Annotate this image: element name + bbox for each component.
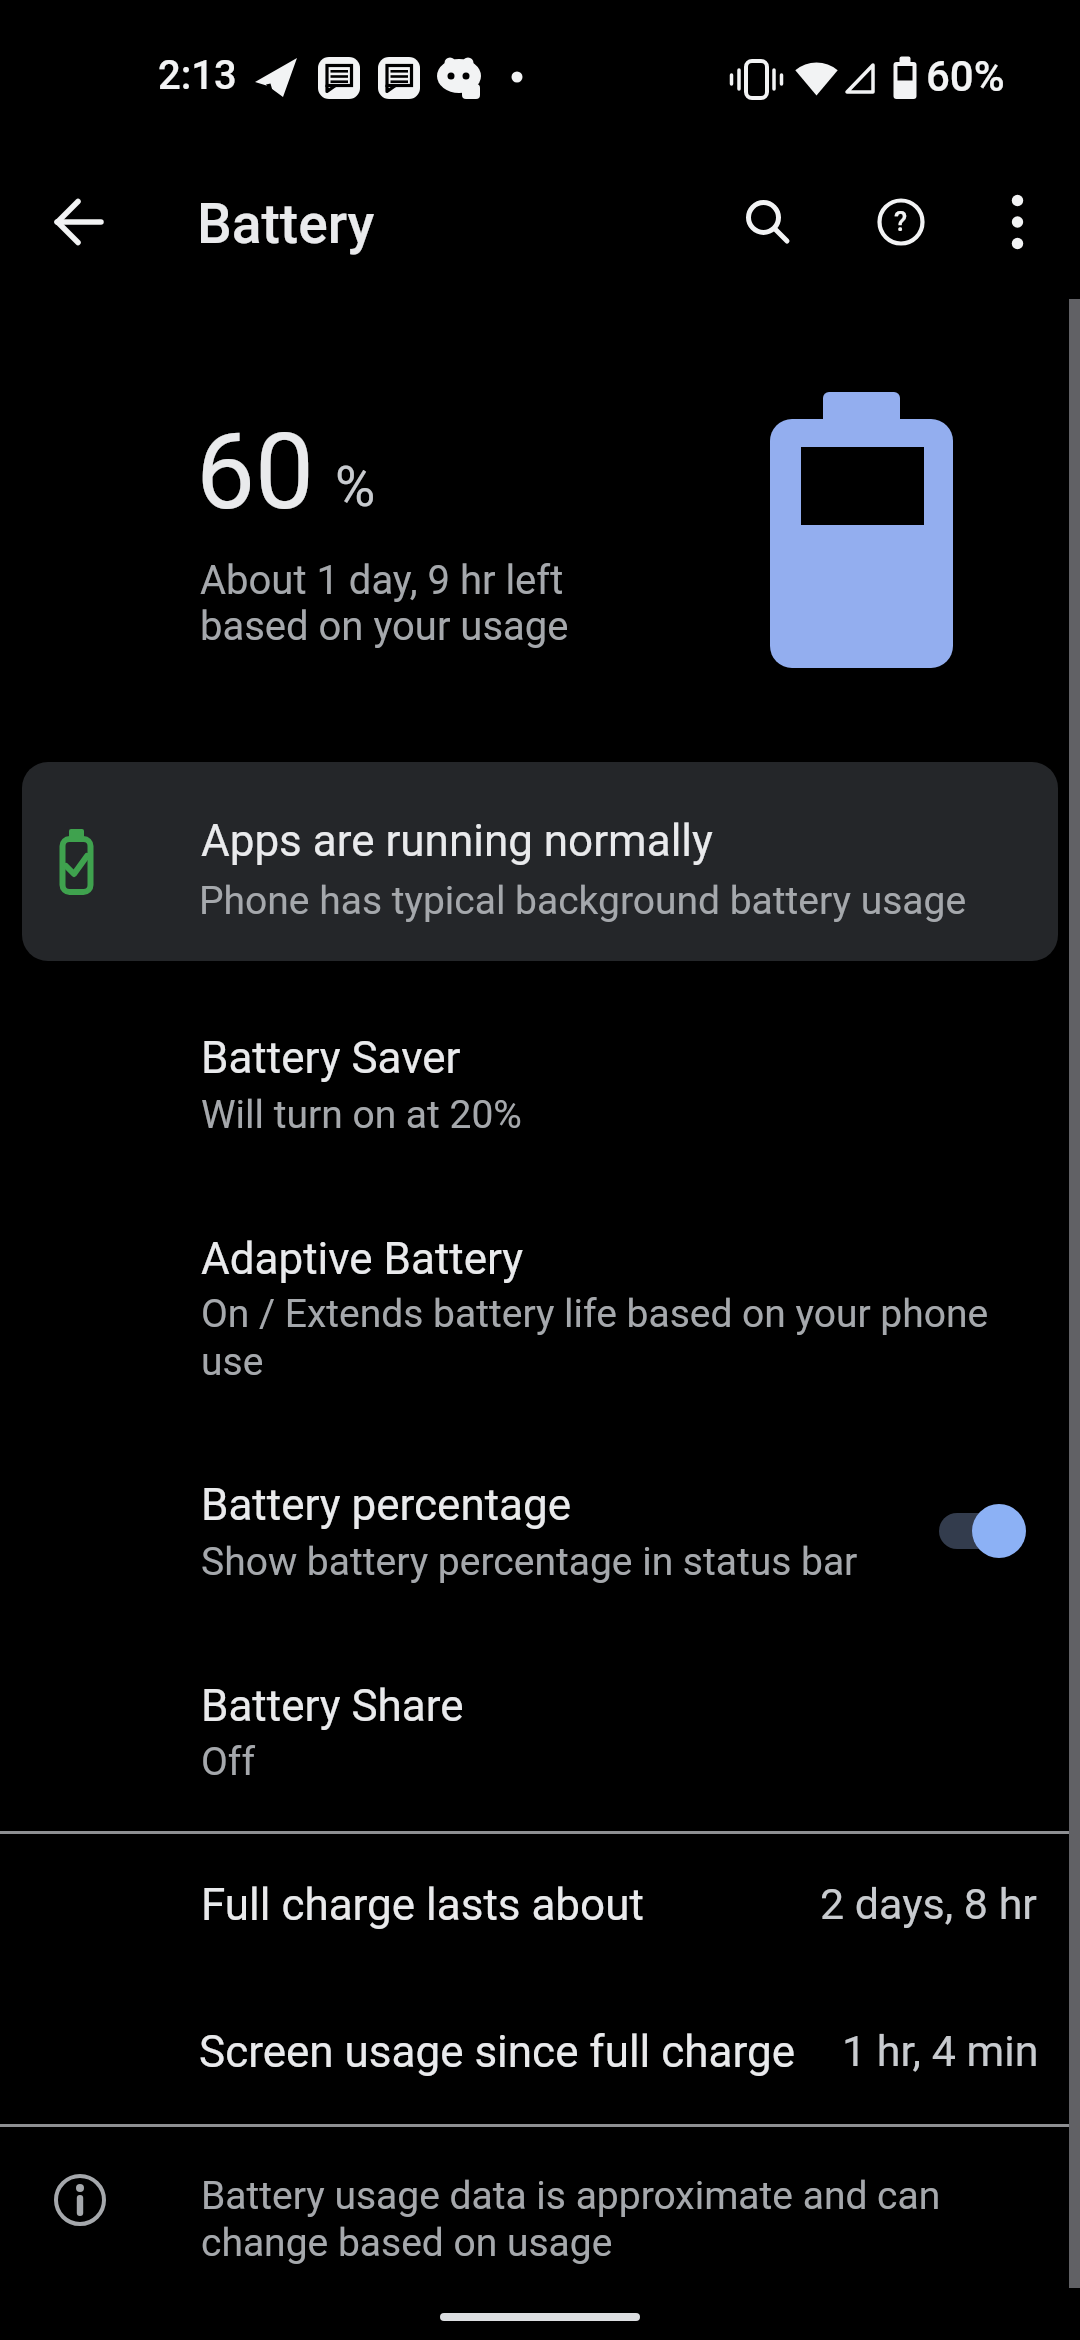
button[interactable]: Adaptive Battery (0, 1205, 1080, 1405)
staticText: Battery percentage (201, 1479, 572, 1531)
staticText: Battery usage data is approximate and ca… (201, 2173, 941, 2219)
staticText: Battery Share (201, 1680, 464, 1732)
staticText: Show battery percentage in status bar (201, 1539, 858, 1585)
button[interactable] (983, 188, 1051, 256)
staticText: 2 days, 8 hr (820, 1879, 1037, 1929)
staticText: Off (201, 1739, 255, 1785)
staticText: Will turn on at 20% (201, 1092, 522, 1138)
staticText: change based on usage (201, 2220, 613, 2266)
staticText: based on your usage (200, 603, 569, 650)
staticText: Adaptive Battery (201, 1233, 524, 1285)
staticText: Battery Saver (201, 1032, 461, 1084)
staticText: Screen usage since full charge (199, 2026, 795, 2078)
staticText: Battery (197, 192, 375, 256)
button[interactable]: Battery Saver (0, 1005, 1080, 1165)
staticText: 1 hr, 4 min (842, 2026, 1039, 2076)
button[interactable] (44, 188, 112, 256)
button[interactable]: Battery Share (0, 1651, 1080, 1811)
staticText: 60% (926, 52, 1005, 101)
staticText: % (335, 455, 376, 519)
staticText: 60 (196, 411, 315, 534)
staticText: 2:13 (158, 52, 237, 99)
staticText: use (201, 1339, 264, 1385)
staticText: Apps are running normally (201, 815, 713, 867)
button[interactable]: Battery percentage (0, 1451, 1080, 1611)
staticText: On / Extends battery life based on your … (201, 1291, 989, 1337)
button[interactable]: Apps are running normally (22, 762, 1058, 961)
staticText: Full charge lasts about (201, 1879, 644, 1931)
button[interactable] (734, 188, 802, 256)
staticText: ? (894, 206, 908, 238)
button[interactable]: Screen usage since full charge (0, 1998, 1080, 2128)
button[interactable]: ? (867, 188, 935, 256)
staticText: Phone has typical background battery usa… (199, 878, 967, 924)
button[interactable]: Full charge lasts about (0, 1851, 1080, 1981)
staticText: About 1 day, 9 hr left (200, 557, 564, 604)
